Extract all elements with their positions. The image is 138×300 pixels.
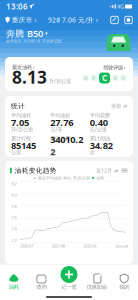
- button[interactable]: 重庆市: [5, 16, 36, 24]
- button[interactable]: 我的: [110, 269, 138, 290]
- staticText: 近12月 ⇄: [96, 167, 118, 174]
- staticText: 2021-08: [52, 243, 65, 249]
- staticText: 元/公里: [90, 126, 107, 133]
- staticText: 奔腾 B50: [6, 27, 43, 40]
- button[interactable]: 近12月 ⇄: [96, 167, 118, 174]
- staticText: 优惠加油: [87, 284, 107, 290]
- staticText: 查询: [36, 284, 46, 290]
- staticText: 2020-07: [20, 243, 33, 249]
- staticText: 27.76: [50, 116, 73, 129]
- staticText: 7.8: [11, 204, 16, 209]
- staticText: 92# 7.06 元/升 ›: [48, 16, 98, 24]
- staticText: 0.40: [90, 116, 108, 129]
- staticText: 油耗: [96, 175, 104, 180]
- staticText: 最近平均油耗 单位: 升/百公里: [38, 175, 90, 181]
- staticText: 4G: [116, 3, 125, 10]
- staticText: B: [92, 75, 95, 81]
- staticText: 升/百公里: [49, 77, 71, 85]
- button[interactable]: Add entry: [60, 266, 77, 283]
- button[interactable]: Share: [110, 15, 119, 24]
- staticText: 次: [90, 149, 95, 156]
- staticText: 升/百公里: [11, 126, 33, 133]
- staticText: 元/升: [50, 126, 62, 133]
- staticText: 驾驶评级 ›: [103, 64, 126, 71]
- staticText: 油耗变化趋势: [15, 166, 57, 175]
- button[interactable]: 最近油耗 ›: [12, 64, 71, 84]
- staticText: 统计: [11, 102, 25, 110]
- button[interactable]: 92# 7.06 元/升 ›: [48, 16, 98, 24]
- staticText: 7.05: [11, 116, 29, 129]
- staticText: 34010.22: [50, 133, 83, 158]
- staticText: 去年到手 2013年1月 手动舒适型: [6, 38, 62, 44]
- button[interactable]: 驾驶评级 ›: [83, 64, 126, 83]
- staticText: 13:06: [6, 1, 28, 12]
- staticText: D: [114, 75, 117, 81]
- staticText: 8.2: [11, 181, 16, 186]
- staticText: 平均油价: [50, 112, 70, 119]
- staticText: ›: [34, 16, 36, 24]
- staticText: 最近油耗 ›: [12, 63, 35, 71]
- staticText: 7.4: [11, 226, 16, 232]
- staticText: E: [122, 75, 124, 81]
- button[interactable]: Table view: [121, 167, 128, 174]
- staticText: 我的: [119, 284, 129, 290]
- button[interactable]: Calculator: [124, 15, 133, 24]
- staticText: 2025-04: [115, 243, 128, 249]
- staticText: 全部 ⇄: [111, 103, 127, 109]
- staticText: 平均花费: [90, 112, 110, 119]
- button[interactable]: 记一笔: [55, 269, 83, 290]
- staticText: 8.0: [11, 192, 16, 198]
- staticText: 平均油耗: [11, 112, 31, 119]
- staticText: A: [84, 75, 87, 81]
- button[interactable]: 奔腾 B50: [6, 29, 48, 38]
- staticText: 公里: [11, 149, 21, 156]
- staticText: 累计加油: [90, 135, 110, 142]
- staticText: C: [102, 73, 107, 83]
- button[interactable]: 全部 ⇄: [111, 103, 127, 109]
- staticText: 油耗: [9, 284, 19, 290]
- staticText: 重庆市: [12, 16, 33, 24]
- button[interactable]: 优惠加油: [83, 269, 110, 290]
- staticText: 8.13: [12, 65, 47, 88]
- staticText: 34.82: [90, 139, 113, 152]
- staticText: 累计油费: [50, 135, 70, 142]
- staticText: 2023-06: [83, 243, 96, 249]
- staticText: 7.2: [11, 238, 16, 243]
- staticText: 累计行程: [11, 135, 31, 142]
- button[interactable]: 油耗: [0, 269, 28, 290]
- button[interactable]: 查询: [28, 269, 55, 290]
- staticText: 记一笔: [61, 284, 76, 290]
- staticText: ▾: [45, 30, 48, 37]
- staticText: 85145: [11, 139, 36, 152]
- staticText: 元: [50, 149, 55, 156]
- staticText: 7.6: [11, 215, 16, 220]
